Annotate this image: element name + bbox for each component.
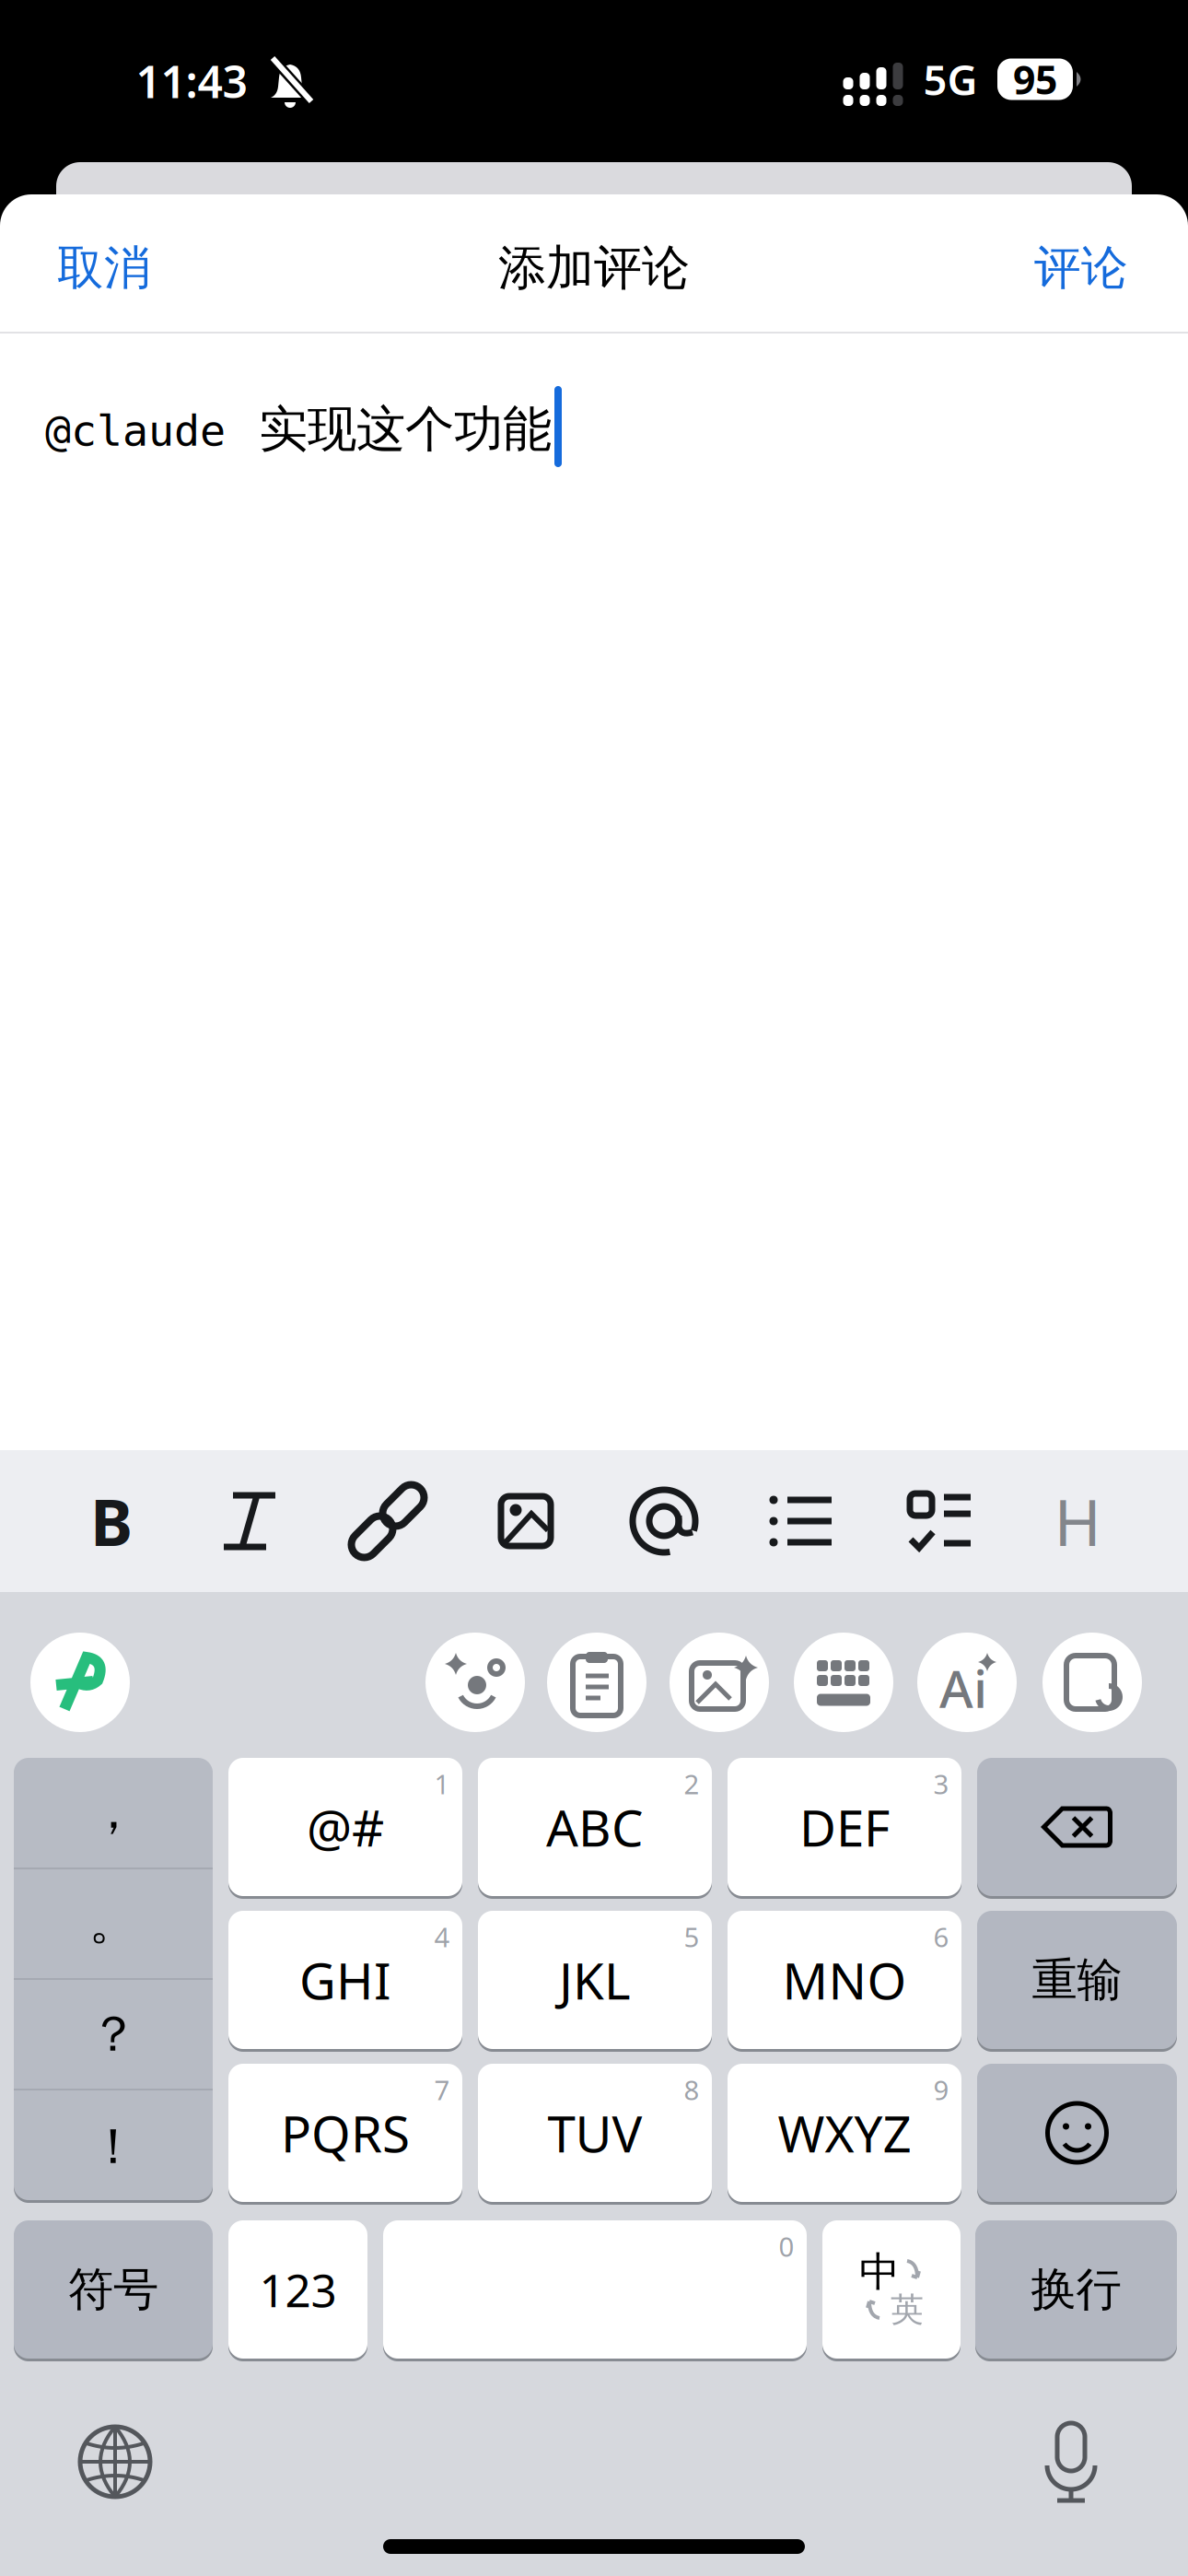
staticText: 5 <box>684 1919 699 1955</box>
button[interactable] <box>383 2219 807 2360</box>
staticText: @# <box>307 1794 384 1860</box>
staticText: 。 <box>89 1892 138 1952</box>
button[interactable]: 换行 <box>975 2219 1177 2360</box>
button[interactable] <box>609 1466 719 1576</box>
button[interactable] <box>977 1756 1177 1898</box>
staticText: 2 <box>684 1766 699 1802</box>
staticText: 9 <box>933 2072 949 2108</box>
button[interactable] <box>547 1633 646 1732</box>
staticText: @claude <box>45 406 226 455</box>
button[interactable]: GHI <box>228 1909 462 2051</box>
staticText: 实现这个功能 <box>259 399 552 459</box>
button[interactable] <box>332 1466 443 1576</box>
button[interactable]: @claude <box>45 383 1188 475</box>
staticText: 7 <box>434 2072 450 2108</box>
staticText: 评论 <box>1034 239 1128 297</box>
staticText: MNO <box>782 1946 907 2013</box>
button[interactable] <box>885 1466 996 1576</box>
staticText: 取消 <box>57 239 151 297</box>
button[interactable]: Ai <box>917 1633 1017 1732</box>
button[interactable] <box>75 2421 156 2502</box>
button[interactable]: DEF <box>728 1756 961 1898</box>
staticText: 123 <box>259 2259 337 2320</box>
button[interactable] <box>30 1633 130 1732</box>
button[interactable]: 取消 <box>57 239 151 297</box>
button[interactable]: B <box>56 1466 167 1576</box>
button[interactable]: 123 <box>228 2219 367 2360</box>
button[interactable]: PQRS <box>228 2062 462 2204</box>
button[interactable]: 重输 <box>977 1909 1177 2051</box>
button[interactable]: ABC <box>478 1756 712 1898</box>
staticText: 1 <box>434 1766 450 1802</box>
staticText: ？ <box>89 2004 138 2064</box>
staticText: H <box>1054 1479 1101 1564</box>
button[interactable]: WXYZ <box>728 2062 961 2204</box>
button[interactable]: H <box>1022 1466 1133 1576</box>
staticText: 3 <box>933 1766 949 1802</box>
button[interactable]: ， <box>14 1756 213 2202</box>
button[interactable] <box>747 1466 857 1576</box>
button[interactable] <box>1042 1633 1142 1732</box>
button[interactable] <box>794 1633 893 1732</box>
staticText: TUV <box>547 2099 642 2166</box>
staticText: GHI <box>299 1946 391 2013</box>
staticText: Ai <box>939 1654 987 1722</box>
staticText: DEF <box>799 1794 890 1860</box>
staticText: 4 <box>434 1919 450 1955</box>
button[interactable] <box>1030 2418 1112 2506</box>
staticText: 11:43 <box>136 52 247 110</box>
button[interactable]: MNO <box>728 1909 961 2051</box>
button[interactable] <box>471 1466 581 1576</box>
button[interactable]: 中 <box>822 2219 961 2360</box>
staticText: 英 <box>891 2289 924 2330</box>
staticText: 6 <box>933 1919 949 1955</box>
button[interactable] <box>425 1633 525 1732</box>
staticText: ， <box>89 1781 138 1841</box>
staticText: 5G <box>923 52 978 107</box>
button[interactable] <box>670 1633 769 1732</box>
staticText: ！ <box>89 2116 138 2177</box>
staticText: ABC <box>546 1794 644 1860</box>
staticText: 换行 <box>1031 2262 1121 2317</box>
button[interactable]: @# <box>228 1756 462 1898</box>
staticText: 0 <box>779 2228 794 2264</box>
staticText: 中 <box>859 2247 900 2297</box>
staticText: WXYZ <box>778 2099 911 2166</box>
staticText: JKL <box>559 1946 631 2013</box>
button[interactable] <box>194 1466 305 1576</box>
staticText: PQRS <box>281 2099 410 2166</box>
staticText: 添加评论 <box>498 239 690 298</box>
staticText: B <box>90 1479 133 1564</box>
staticText: 符号 <box>68 2262 158 2317</box>
button[interactable]: 符号 <box>14 2219 213 2360</box>
staticText: 重输 <box>1032 1952 1122 2008</box>
staticText: 95 <box>1013 53 1057 105</box>
button[interactable] <box>977 2062 1177 2204</box>
button[interactable]: JKL <box>478 1909 712 2051</box>
button[interactable]: 评论 <box>1034 239 1128 297</box>
button[interactable]: TUV <box>478 2062 712 2204</box>
staticText: 8 <box>684 2072 699 2108</box>
